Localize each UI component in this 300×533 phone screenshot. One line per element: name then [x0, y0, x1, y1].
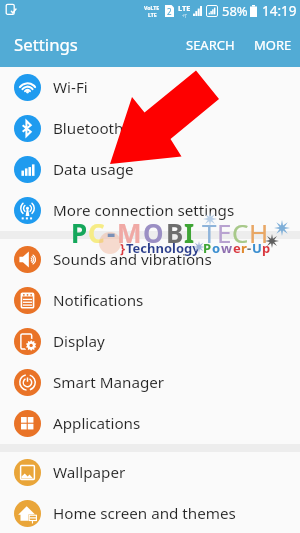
- staticText: C: [88, 215, 105, 250]
- staticText: r: [241, 239, 247, 257]
- button[interactable]: Wallpaper: [0, 452, 300, 493]
- staticText: -: [247, 239, 252, 257]
- staticText: p: [262, 239, 271, 257]
- button[interactable]: More connection settings: [0, 190, 300, 231]
- staticText: C: [232, 215, 249, 250]
- button[interactable]: Notifications: [0, 280, 300, 321]
- button[interactable]: SEARCH: [177, 25, 244, 65]
- button[interactable]: MORE: [244, 25, 300, 65]
- staticText: Sounds and vibrations: [53, 249, 212, 270]
- staticText: Bluetooth: [53, 118, 124, 139]
- staticText: P: [71, 215, 88, 250]
- staticText: Settings: [14, 33, 78, 56]
- staticText: Wi-Fi: [53, 77, 88, 98]
- staticText: T: [202, 215, 217, 250]
- button[interactable]: Smart Manager: [0, 362, 300, 403]
- button[interactable]: Home screen and themes: [0, 493, 300, 533]
- staticText: M: [117, 215, 142, 250]
- staticText: }: [120, 239, 126, 257]
- staticText: Smart Manager: [53, 372, 165, 393]
- staticText: P: [203, 239, 212, 257]
- staticText: e: [233, 239, 241, 257]
- staticText: U: [252, 239, 262, 257]
- staticText: Wallpaper: [53, 462, 126, 483]
- button[interactable]: Applications: [0, 403, 300, 444]
- staticText: LTE: [148, 11, 157, 18]
- button[interactable]: Wi-Fi: [0, 67, 300, 108]
- staticText: H: [249, 215, 269, 250]
- staticText: Display: [53, 331, 105, 352]
- staticText: w: [221, 239, 233, 257]
- button[interactable]: Data usage: [0, 149, 300, 190]
- staticText: Notifications: [53, 290, 144, 311]
- button[interactable]: Sounds and vibrations: [0, 239, 300, 280]
- staticText: 58%: [222, 2, 248, 20]
- staticText: O: [143, 215, 164, 250]
- staticText: I: [184, 215, 195, 250]
- staticText: Data usage: [53, 159, 134, 180]
- staticText: Applications: [53, 413, 141, 434]
- staticText: MORE: [254, 36, 292, 54]
- staticText: -: [107, 215, 116, 250]
- staticText: Technology: [126, 239, 200, 257]
- staticText: SEARCH: [186, 36, 235, 54]
- staticText: E: [217, 215, 232, 250]
- button[interactable]: Bluetooth: [0, 108, 300, 149]
- staticText: +T: [182, 13, 188, 19]
- staticText: B: [166, 215, 184, 250]
- staticText: LTE: [178, 3, 191, 13]
- staticText: VoLTE: [144, 4, 160, 11]
- button[interactable]: Display: [0, 321, 300, 362]
- staticText: o: [212, 239, 221, 257]
- staticText: Home screen and themes: [53, 503, 236, 524]
- staticText: 2: [167, 6, 172, 17]
- staticText: More connection settings: [53, 200, 235, 221]
- staticText: 14:19: [262, 2, 297, 20]
